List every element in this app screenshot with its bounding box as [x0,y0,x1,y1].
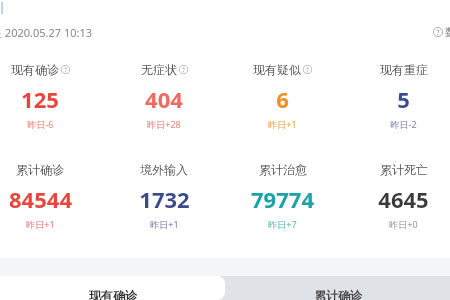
staticText: 125 [21,84,59,114]
button[interactable]: Help [431,25,450,39]
button[interactable]: 现有确诊 [0,276,225,300]
staticText: 昨日+28 [147,118,181,130]
staticText: 现有确诊 [11,62,59,77]
staticText: 现有重症 [380,62,428,77]
staticText: 无症状 [141,62,177,77]
button[interactable]: 无症状 [108,62,220,130]
other: Help [303,65,312,74]
staticText: 4645 [378,184,429,214]
staticText: 5 [397,84,410,114]
staticText: 数 [445,25,450,39]
staticText: 现有疑似 [253,62,301,77]
button[interactable]: 累计确诊 [0,162,96,230]
staticText: 昨日+0 [389,218,418,230]
staticText: 昨日+1 [268,118,297,130]
button[interactable]: 累计确诊 [225,276,450,300]
staticText: 境外输入 [140,162,188,177]
staticText: 累计确诊 [314,288,362,300]
staticText: 昨日+1 [26,218,55,230]
button[interactable]: 累计死亡 [347,162,450,230]
button[interactable]: 现有疑似 [226,62,339,130]
staticText: 昨日-6 [27,118,54,130]
button[interactable]: 境外输入 [108,162,220,230]
staticText: 404 [145,84,183,114]
staticText: 1732 [139,184,190,214]
staticText: 昨日-2 [390,118,417,130]
staticText: 累计确诊 [16,162,64,177]
staticText: 6 [276,84,289,114]
staticText: 昨日+1 [150,218,179,230]
other: Help [179,65,188,74]
button[interactable]: 现有确诊 [0,62,96,130]
staticText: 累计治愈 [259,162,307,177]
staticText: 79774 [251,184,314,214]
staticText: 累计死亡 [380,162,428,177]
staticText: 星 2020.05.27 10:13 [0,25,93,40]
other: Help [433,27,443,37]
staticText: 84544 [9,184,72,214]
staticText: 昨日+7 [268,218,297,230]
other: Help [61,65,70,74]
staticText: 现有确诊 [89,288,137,300]
button[interactable]: 累计治愈 [226,162,339,230]
button[interactable]: 现有重症 [347,62,450,130]
